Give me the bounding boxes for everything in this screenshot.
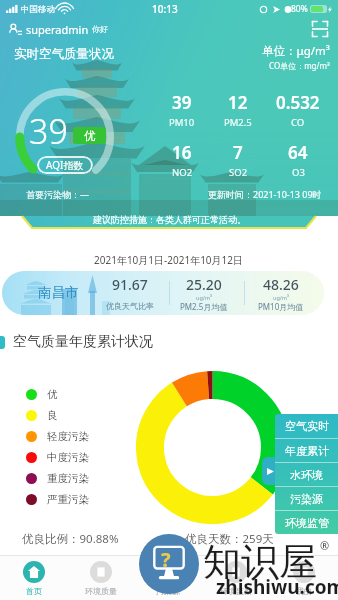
button[interactable]: 污染源	[134, 556, 202, 600]
button[interactable]: 环境监察	[202, 556, 270, 600]
staticText: O3	[292, 166, 305, 179]
staticText: 25.20	[186, 275, 222, 294]
staticText: PM2.5月均值	[180, 301, 228, 312]
staticText: 优良天数：259天	[185, 531, 274, 547]
staticText: 你好	[92, 24, 108, 34]
staticText: 12	[228, 91, 248, 114]
staticText: 2021年10月1日-2021年10月12日	[94, 253, 244, 267]
staticText: PM2.5	[224, 116, 252, 129]
staticText: 重度污染	[47, 472, 89, 485]
staticText: ug/m³	[273, 294, 289, 301]
staticText: 39	[172, 91, 192, 114]
staticText: 环境质量	[85, 586, 117, 596]
button[interactable]: 年度累计	[275, 439, 338, 462]
staticText: 10:13	[152, 2, 178, 16]
staticText: 优	[84, 129, 96, 143]
staticText: 80%	[291, 3, 308, 15]
staticText: SO2	[229, 166, 248, 179]
staticText: 南昌市	[38, 284, 79, 301]
staticText: 年度累计	[285, 444, 329, 458]
staticText: 64	[288, 141, 308, 164]
staticText: 单位：μg/m³	[262, 43, 330, 59]
staticText: PM10	[169, 116, 195, 129]
staticText: 环境监管	[285, 516, 329, 530]
staticText: AQI指数	[46, 158, 84, 172]
staticText: PM10月均值	[258, 301, 304, 312]
button[interactable]: AQI指数	[37, 156, 93, 174]
staticText: 首要污染物：—	[26, 188, 90, 200]
staticText: superadmin	[26, 22, 89, 37]
staticText: 水环境	[290, 468, 323, 482]
staticText: ?	[161, 546, 171, 573]
staticText: zhishiwu.com	[216, 574, 338, 600]
staticText: 优良天气比率	[106, 301, 154, 311]
staticText: 严重污染	[47, 493, 89, 506]
staticText: NO2	[172, 166, 193, 179]
staticText: CO单位：mg/m³	[269, 60, 330, 71]
button[interactable]: Scan QR code	[309, 18, 331, 40]
staticText: 空气实时	[285, 419, 329, 433]
button[interactable]: 污染源	[275, 487, 338, 510]
staticText: 首页	[26, 586, 42, 596]
staticText: 0.532	[276, 91, 320, 114]
staticText: 污染源	[290, 492, 323, 506]
staticText: 39	[29, 108, 68, 154]
staticText: 建议防控措施：各类人群可正常活动。	[93, 214, 246, 225]
staticText: 7	[233, 141, 243, 164]
button[interactable]: 空气实时	[275, 414, 338, 438]
staticText: 知识屋	[203, 538, 317, 586]
staticText: ug/m³	[196, 294, 212, 301]
staticText: 我的	[296, 586, 312, 596]
staticText: CO	[291, 116, 305, 129]
staticText: 实时空气质量状况	[14, 46, 114, 62]
staticText: 16	[172, 141, 192, 164]
button[interactable]: 环境监管	[275, 511, 338, 534]
staticText: 空气质量年度累计状况	[13, 333, 153, 351]
button[interactable]: 首页	[0, 556, 67, 600]
staticText: 91.67	[112, 275, 148, 294]
staticText: ®	[320, 538, 330, 553]
staticText: 优良比例：90.88%	[22, 531, 119, 547]
staticText: 中国移动	[21, 4, 55, 15]
button[interactable]: 我的	[270, 556, 338, 600]
staticText: 更新时间：2021-10-13 09时	[208, 188, 322, 200]
button[interactable]: Collapse menu	[262, 457, 278, 485]
staticText: 污染源	[156, 586, 180, 596]
staticText: 良	[47, 409, 58, 422]
staticText: 环境监察	[220, 586, 252, 596]
staticText: 轻度污染	[47, 430, 89, 443]
staticText: 中度污染	[47, 451, 89, 464]
staticText: 优	[47, 388, 58, 401]
button[interactable]: 环境质量	[67, 556, 134, 600]
button[interactable]: 水环境	[275, 463, 338, 486]
staticText: 48.26	[263, 275, 299, 294]
